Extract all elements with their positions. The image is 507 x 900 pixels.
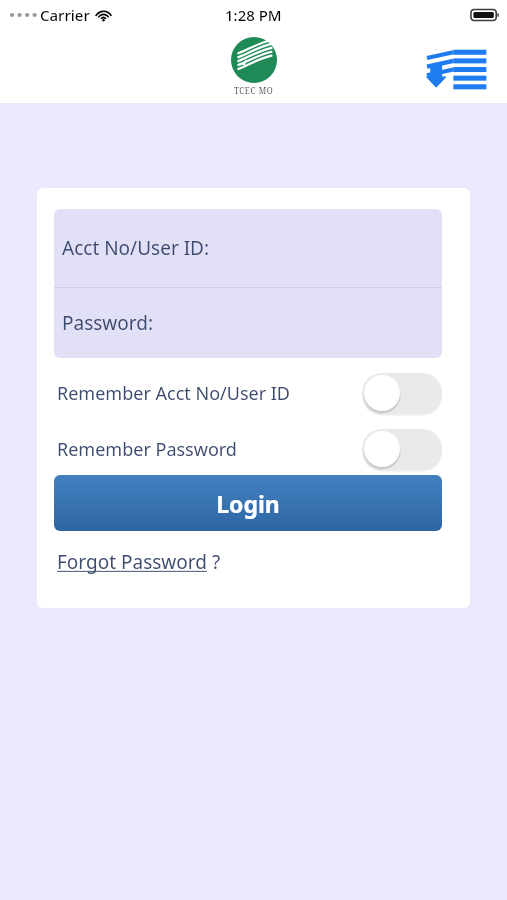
button[interactable]: TCEC MO logo xyxy=(225,37,283,96)
button[interactable]: Forgot Password xyxy=(54,549,221,575)
staticText: ? xyxy=(207,549,221,575)
button[interactable]: Password: xyxy=(54,288,442,358)
button[interactable]: Login xyxy=(54,475,442,531)
staticText: 1:28 PM xyxy=(225,5,282,25)
staticText: Remember Acct No/User ID xyxy=(57,381,291,406)
staticText: Carrier xyxy=(40,5,90,25)
button[interactable]: Remember Password xyxy=(54,429,442,469)
button[interactable]: Acct No/User ID: xyxy=(54,209,442,287)
button[interactable]: Remember Acct No/User ID xyxy=(54,373,442,413)
staticText: Login xyxy=(216,488,280,519)
staticText: Password: xyxy=(62,310,154,336)
staticText: TCEC MO xyxy=(234,85,274,96)
staticText: Remember Password xyxy=(57,437,237,462)
staticText: Acct No/User ID: xyxy=(62,235,210,261)
staticText: Forgot Password xyxy=(57,549,207,575)
button[interactable]: Menu xyxy=(423,43,489,91)
